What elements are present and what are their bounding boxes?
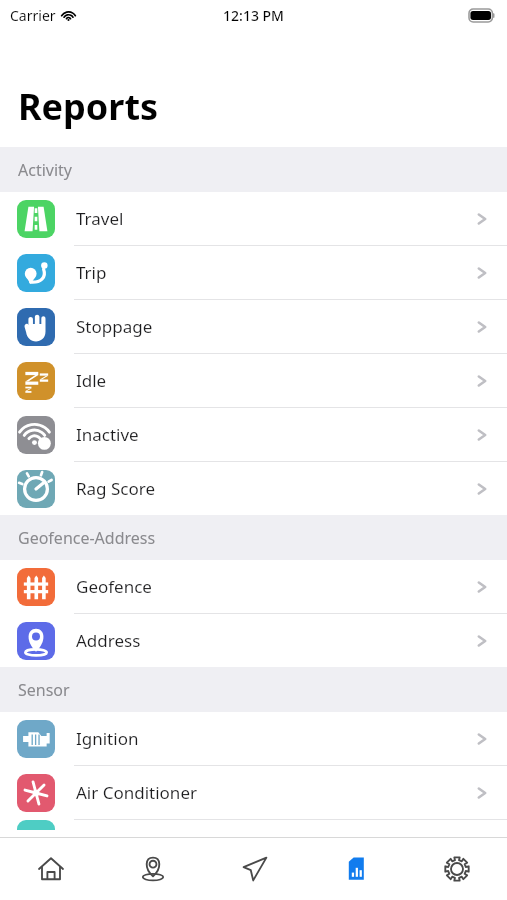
staticText: Ignition — [76, 727, 139, 750]
button[interactable]: Trip — [0, 246, 507, 300]
staticText: Stoppage — [76, 315, 153, 338]
staticText: Activity — [18, 159, 73, 181]
button[interactable]: Navigate — [204, 838, 305, 900]
staticText: Geofence-Address — [18, 527, 156, 549]
staticText: Trip — [76, 261, 107, 284]
staticText: Reports — [18, 82, 159, 131]
staticText: Idle — [76, 369, 107, 392]
button[interactable]: Inactive — [0, 408, 507, 462]
button[interactable]: Address — [0, 614, 507, 667]
staticText: Rag Score — [76, 477, 156, 500]
button[interactable]: Rag Score — [0, 462, 507, 515]
button[interactable]: Settings — [406, 838, 507, 900]
staticText: Air Conditioner — [76, 781, 197, 804]
button[interactable]: Places — [102, 838, 204, 900]
button[interactable]: Ignition — [0, 712, 507, 766]
button[interactable]: Idle — [0, 354, 507, 408]
staticText: Geofence — [76, 575, 152, 598]
button[interactable]: Home — [0, 838, 102, 900]
button[interactable]: Travel — [0, 192, 507, 246]
button[interactable]: Reports — [305, 838, 406, 900]
button[interactable]: Geofence — [0, 560, 507, 614]
staticText: Inactive — [76, 423, 139, 446]
staticText: Address — [76, 629, 141, 652]
button[interactable]: Air Conditioner — [0, 766, 507, 820]
staticText: Sensor — [18, 679, 70, 701]
staticText: Carrier — [10, 6, 56, 25]
staticText: 12:13 PM — [223, 6, 284, 25]
button[interactable]: Stoppage — [0, 300, 507, 354]
staticText: Travel — [76, 207, 124, 230]
